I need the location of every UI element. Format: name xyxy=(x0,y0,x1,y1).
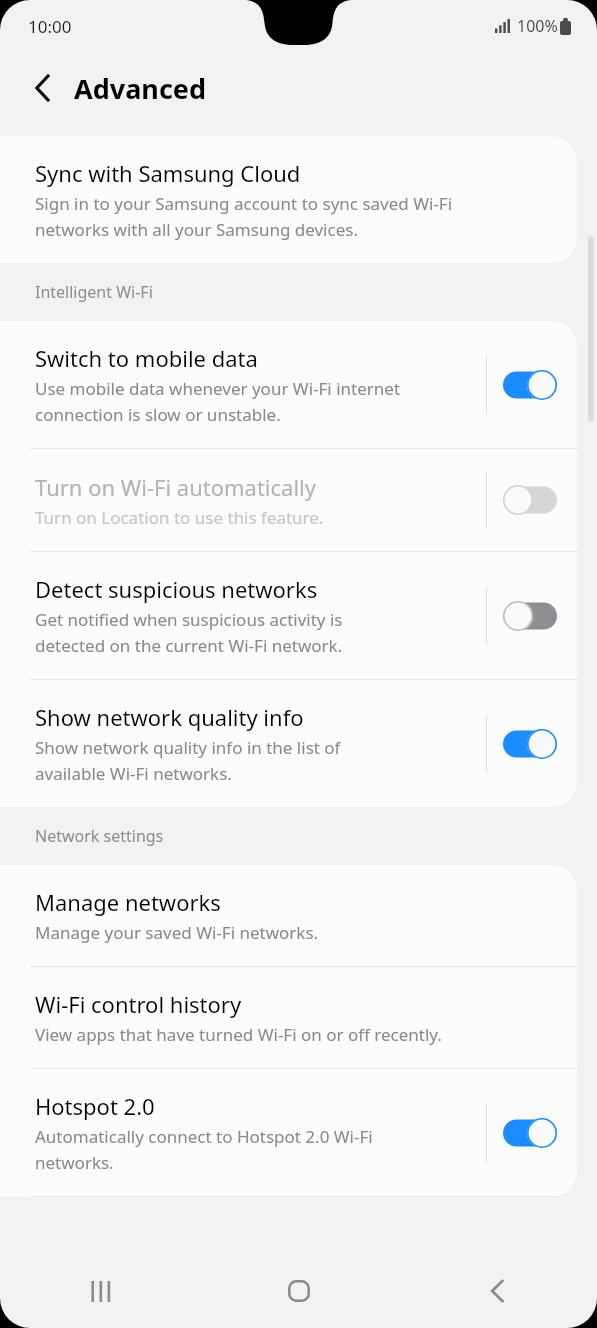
button[interactable]: Back xyxy=(398,1254,597,1328)
button[interactable]: Toggle Show network quality info xyxy=(503,729,557,759)
staticText: Advanced xyxy=(74,70,207,107)
staticText: Detect suspicious networks xyxy=(35,574,318,604)
staticText: 100% xyxy=(517,15,558,37)
staticText: Use mobile data whenever your Wi-Fi inte… xyxy=(35,377,401,426)
staticText: Show network quality info in the list of… xyxy=(35,736,341,785)
staticText: Sign in to your Samsung account to sync … xyxy=(35,192,453,241)
staticText: Turn on Wi-Fi automatically xyxy=(35,472,316,502)
button[interactable]: Hotspot 2.0 xyxy=(0,1069,577,1196)
button[interactable]: Sync with Samsung Cloud xyxy=(0,136,577,263)
staticText: Hotspot 2.0 xyxy=(35,1091,155,1121)
button[interactable]: Turn on Wi-Fi automatically xyxy=(0,449,577,551)
button[interactable]: Wi-Fi control history xyxy=(0,967,577,1068)
staticText: Switch to mobile data xyxy=(35,343,258,373)
button[interactable]: Switch to mobile data xyxy=(0,321,577,448)
button[interactable]: Manage networks xyxy=(0,865,577,966)
button[interactable]: Toggle Hotspot 2.0 xyxy=(503,1118,557,1148)
button[interactable]: Show network quality info xyxy=(0,680,577,807)
staticText: View apps that have turned Wi-Fi on or o… xyxy=(35,1023,442,1046)
staticText: Show network quality info xyxy=(35,702,304,732)
button[interactable]: Toggle Switch to mobile data xyxy=(503,370,557,400)
staticText: Manage networks xyxy=(35,887,221,917)
staticText: Network settings xyxy=(35,825,164,847)
button[interactable]: Toggle Detect suspicious networks xyxy=(503,601,557,631)
staticText: Get notified when suspicious activity is… xyxy=(35,608,343,657)
button[interactable]: Home xyxy=(199,1254,398,1328)
staticText: Turn on Location to use this feature. xyxy=(35,506,324,529)
staticText: Manage your saved Wi-Fi networks. xyxy=(35,921,319,944)
button[interactable]: Toggle Turn on Wi-Fi automatically xyxy=(503,485,557,515)
staticText: Automatically connect to Hotspot 2.0 Wi-… xyxy=(35,1125,373,1174)
staticText: Wi-Fi control history xyxy=(35,989,242,1019)
staticText: 10:00 xyxy=(28,15,72,38)
staticText: Intelligent Wi-Fi xyxy=(35,281,153,303)
button[interactable]: Recent apps xyxy=(0,1254,199,1328)
button[interactable]: Detect suspicious networks xyxy=(0,552,577,679)
button[interactable]: Back xyxy=(20,65,66,111)
staticText: Sync with Samsung Cloud xyxy=(35,158,301,188)
